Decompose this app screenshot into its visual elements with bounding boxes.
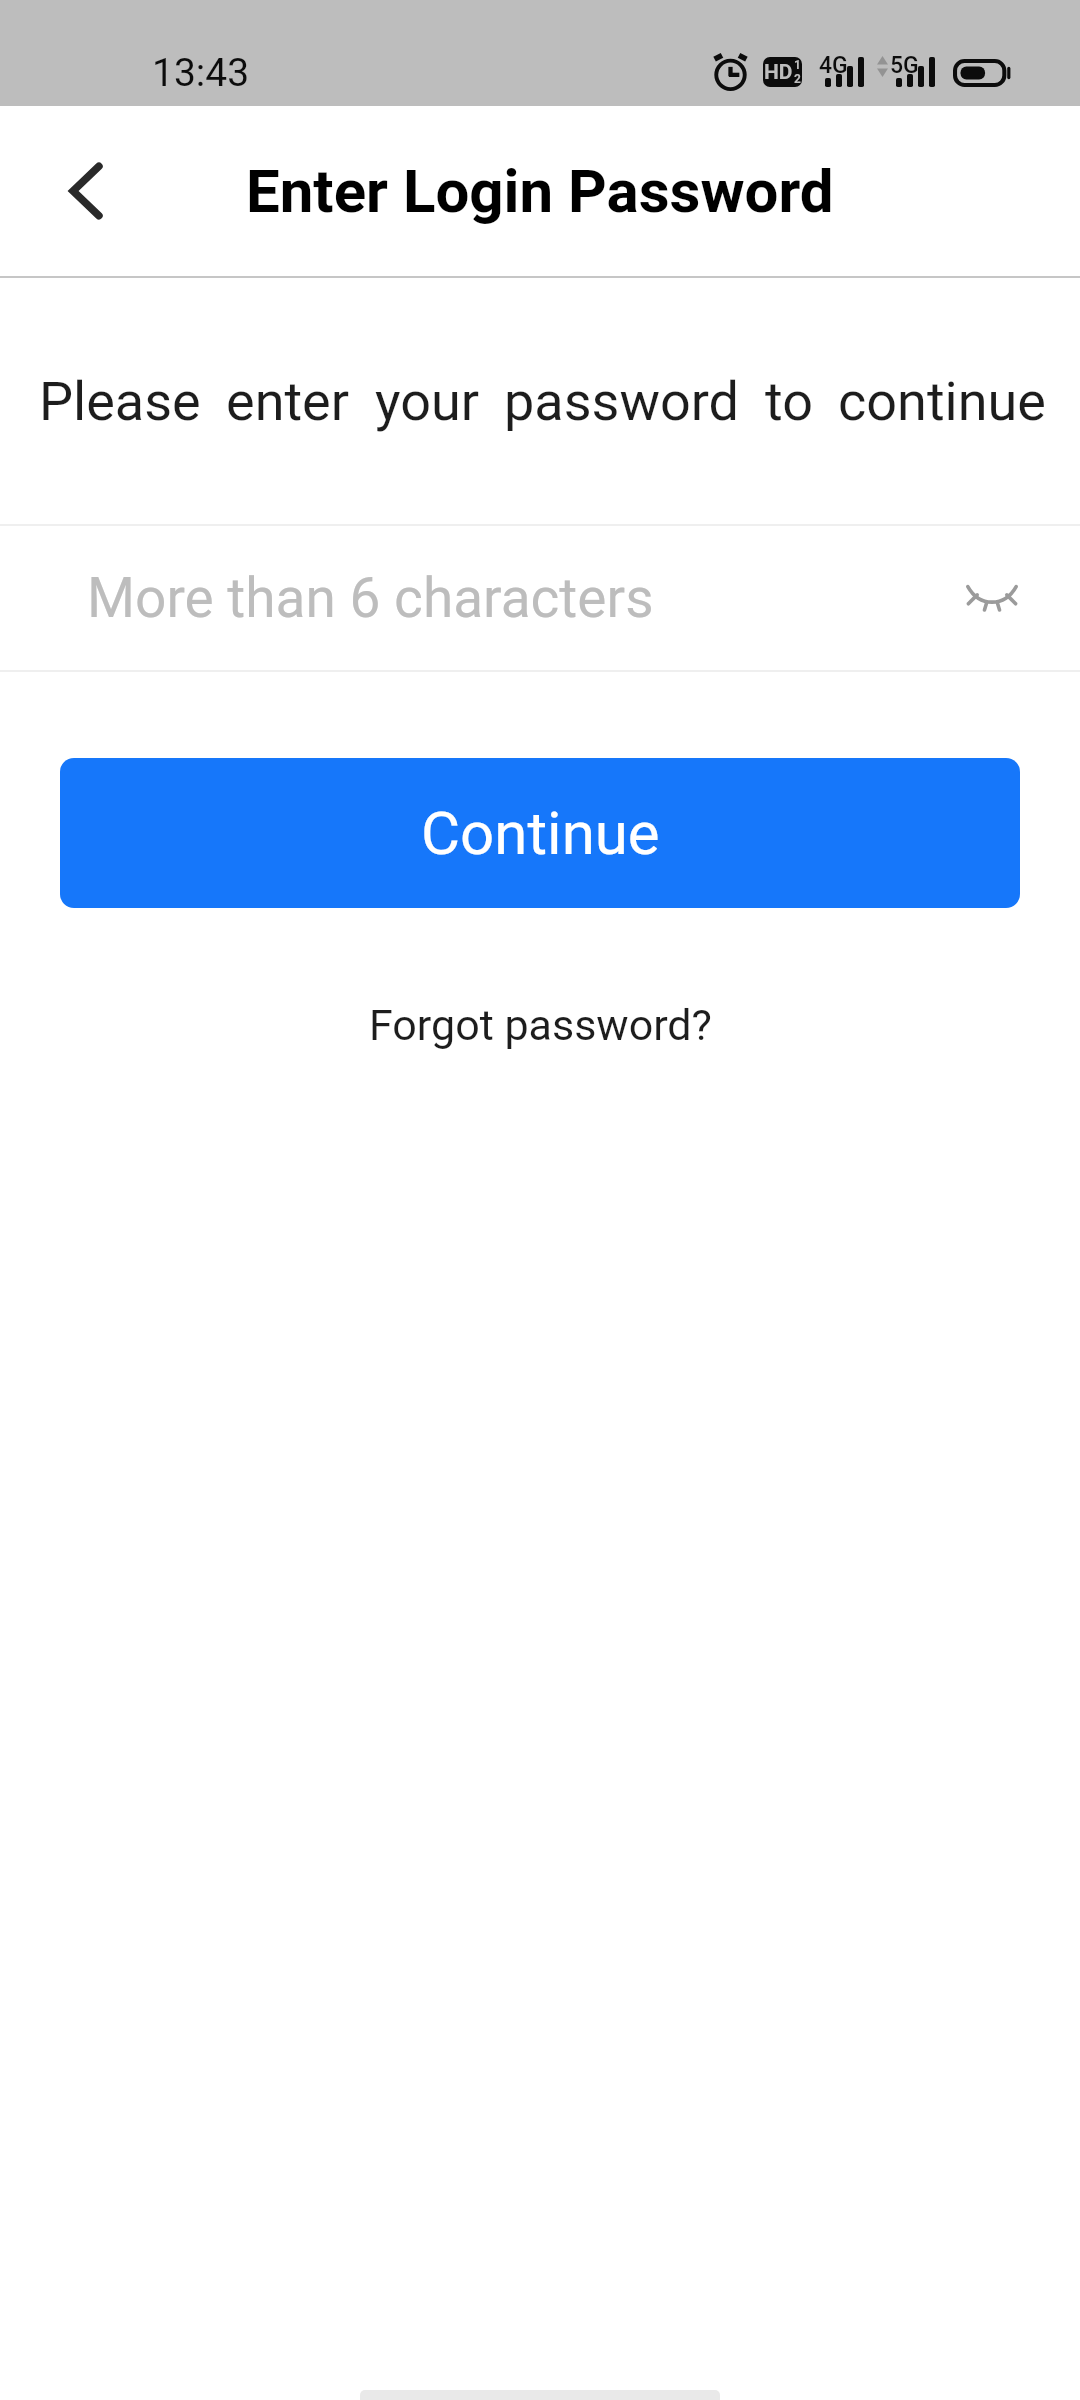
staticText: Enter Login Password xyxy=(246,156,834,226)
button[interactable]: Forgot password? xyxy=(345,986,736,1064)
staticText: Forgot password? xyxy=(369,1000,712,1050)
staticText: 13:43 xyxy=(152,50,250,96)
staticText: to xyxy=(765,370,813,433)
staticText: 5G xyxy=(890,52,919,79)
button[interactable]: More than 6 characters xyxy=(0,526,1080,670)
staticText: 4G xyxy=(819,52,848,79)
staticText: More than 6 characters xyxy=(87,566,654,630)
staticText: 2 xyxy=(794,72,801,86)
staticText: enter xyxy=(226,370,350,433)
staticText: HD xyxy=(764,60,793,85)
staticText: Please xyxy=(39,370,201,433)
staticText: password xyxy=(504,370,740,433)
staticText: Continue xyxy=(421,798,660,868)
button[interactable]: Back xyxy=(32,137,140,245)
button[interactable]: Continue xyxy=(60,758,1020,908)
button[interactable]: Show password xyxy=(937,543,1047,653)
staticText: 1 xyxy=(794,58,801,72)
staticText: your xyxy=(375,370,480,433)
staticText: continue xyxy=(838,370,1046,433)
